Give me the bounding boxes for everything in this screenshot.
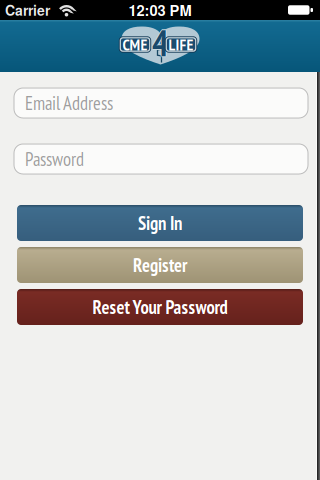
staticText: Carrier bbox=[5, 0, 50, 20]
button[interactable]: Email Address bbox=[13, 88, 307, 118]
staticText: 4 bbox=[152, 20, 169, 66]
staticText: Sign In bbox=[138, 211, 182, 235]
staticText: 4 bbox=[153, 20, 170, 66]
staticText: 4 bbox=[152, 19, 169, 65]
staticText: Email Address bbox=[25, 91, 113, 115]
staticText: 12:03 PM bbox=[128, 0, 191, 20]
staticText: CME bbox=[122, 34, 147, 55]
button[interactable]: Password bbox=[13, 144, 307, 174]
staticText: Reset Your Password bbox=[92, 295, 227, 319]
staticText: 4 bbox=[152, 21, 169, 67]
staticText: LIFE bbox=[168, 34, 193, 55]
button[interactable]: Reset Your Password bbox=[17, 289, 303, 325]
button[interactable]: Sign In bbox=[17, 205, 303, 241]
staticText: 4 bbox=[151, 20, 168, 66]
button[interactable]: Register bbox=[17, 247, 303, 283]
staticText: Password bbox=[25, 147, 84, 171]
staticText: Register bbox=[133, 253, 187, 277]
